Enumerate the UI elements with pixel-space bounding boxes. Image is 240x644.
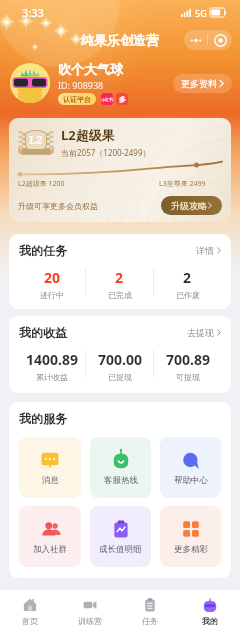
staticText: 已作废: [176, 290, 200, 300]
button[interactable]: 首页: [0, 590, 60, 644]
staticText: 3:33: [22, 5, 44, 20]
staticText: 加入社群: [33, 544, 67, 555]
staticText: 我的: [202, 616, 218, 626]
button[interactable]: 训练营: [60, 590, 120, 644]
button[interactable]: 认证平台: [58, 93, 96, 105]
button[interactable]: 2: [86, 268, 153, 300]
staticText: 可提现: [176, 372, 200, 382]
staticText: 2: [115, 268, 124, 287]
staticText: 更多资料: [181, 78, 217, 89]
button[interactable]: 1400.89: [19, 350, 85, 384]
staticText: 成长值明细: [99, 544, 142, 555]
staticText: 已完成: [108, 290, 132, 300]
staticText: 去提现: [187, 327, 214, 338]
staticText: 多: [119, 95, 126, 104]
button[interactable]: 700.00: [86, 350, 153, 384]
staticText: 当前2057（1200-2499）: [61, 147, 151, 158]
staticText: 700.89: [166, 350, 210, 369]
staticText: L2超级果: [61, 126, 115, 144]
button[interactable]: 700.89: [154, 350, 221, 384]
button[interactable]: Douyin: [116, 93, 128, 105]
button[interactable]: 成长值明细: [90, 506, 151, 567]
staticText: L3至尊果 2499: [159, 179, 206, 189]
button[interactable]: 去提现: [187, 327, 221, 338]
staticText: 进行中: [40, 290, 64, 300]
button[interactable]: Target: [208, 30, 232, 50]
button[interactable]: More options: [184, 30, 207, 50]
staticText: 700.00: [98, 350, 142, 369]
staticText: 消息: [42, 475, 59, 486]
staticText: 5G: [195, 7, 207, 19]
staticText: 详情: [196, 245, 214, 256]
button[interactable]: 更多精彩: [160, 506, 221, 567]
staticText: 首页: [22, 616, 38, 626]
staticText: L2: [29, 132, 43, 147]
staticText: 任务: [142, 616, 158, 626]
staticText: 20: [44, 268, 61, 287]
staticText: 客服热线: [104, 475, 138, 486]
button[interactable]: Xiaohongshu: [101, 93, 113, 105]
button[interactable]: 消息: [19, 437, 81, 498]
staticText: 小红书: [101, 97, 113, 102]
staticText: 已提现: [108, 372, 132, 382]
button[interactable]: 升级攻略: [161, 196, 222, 215]
button[interactable]: 帮助中心: [160, 437, 221, 498]
staticText: 训练营: [78, 616, 102, 626]
staticText: 纯果乐创造营: [81, 32, 159, 48]
staticText: L2超级果 1200: [18, 179, 65, 189]
staticText: 认证平台: [63, 95, 91, 104]
staticText: 我的收益: [19, 325, 67, 340]
button[interactable]: 客服热线: [90, 437, 151, 498]
staticText: 我的服务: [19, 411, 67, 426]
button[interactable]: 加入社群: [19, 506, 81, 567]
button[interactable]: 详情: [196, 245, 221, 256]
staticText: 吹个大气球: [58, 61, 123, 77]
staticText: 升级可享更多会员权益: [18, 201, 98, 211]
staticText: 帮助中心: [174, 475, 208, 486]
button[interactable]: L2: [9, 118, 231, 222]
staticText: ID: 908938: [58, 79, 104, 91]
button[interactable]: 我的: [180, 590, 240, 644]
button[interactable]: 更多资料: [173, 74, 232, 93]
button[interactable]: 任务: [120, 590, 180, 644]
staticText: 累计收益: [36, 372, 68, 382]
button[interactable]: 20: [19, 268, 85, 300]
button[interactable]: 2: [154, 268, 221, 300]
staticText: 我的任务: [19, 243, 67, 258]
staticText: 更多精彩: [174, 544, 208, 555]
staticText: 升级攻略: [171, 200, 207, 211]
staticText: 1400.89: [26, 350, 78, 369]
staticText: 2: [183, 268, 192, 287]
